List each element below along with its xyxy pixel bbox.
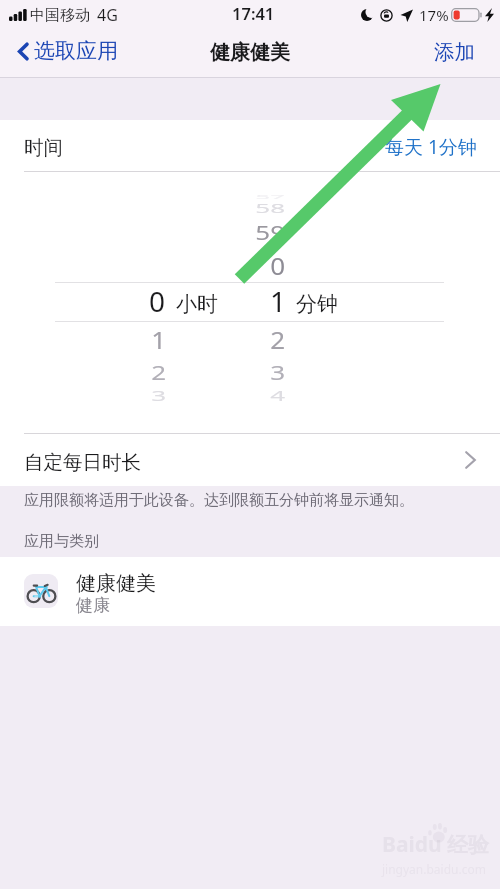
staticText: 中国移动 (30, 6, 90, 25)
staticText: 3 (96, 386, 166, 405)
staticText: 添加 (434, 39, 475, 65)
staticText: 时间 (24, 135, 63, 160)
staticText: 选取应用 (34, 38, 118, 64)
staticText: 健康健美 (210, 40, 290, 65)
staticText: 4 (215, 386, 285, 405)
staticText: 0 (215, 249, 285, 282)
staticText: Baidu (382, 830, 442, 859)
staticText: 小时 (176, 291, 218, 317)
staticText: 健康健美 (76, 571, 156, 596)
staticText: 58 (215, 200, 285, 217)
staticText: 应用限额将适用于此设备。达到限额五分钟前将显示通知。 (24, 491, 414, 510)
staticText: 0 (149, 282, 166, 320)
staticText: 17:41 (232, 2, 275, 24)
button[interactable]: 健康健美 (0, 557, 500, 626)
staticText: 3 (215, 358, 285, 385)
staticText: 4G (97, 4, 118, 26)
staticText: 59 (215, 219, 285, 246)
staticText: 自定每日时长 (24, 450, 141, 475)
staticText: 分钟 (296, 291, 338, 317)
staticText: 57 (215, 193, 285, 201)
staticText: 经验 (447, 832, 489, 858)
button[interactable]: 自定每日时长 (0, 436, 500, 488)
staticText: 1 (96, 324, 166, 355)
staticText: 应用与类别 (24, 532, 99, 551)
button[interactable]: 添加 (416, 32, 500, 72)
button[interactable]: 选取应用 (0, 33, 128, 71)
staticText: 2 (96, 358, 166, 385)
staticText: 2 (215, 324, 285, 355)
button[interactable]: 时间 (0, 120, 500, 171)
staticText: 每天 1分钟 (385, 134, 477, 160)
staticText: 健康 (76, 595, 110, 616)
staticText: 1 (270, 282, 287, 320)
staticText: 17% (419, 5, 449, 25)
other: Open custom daily duration (465, 451, 476, 469)
